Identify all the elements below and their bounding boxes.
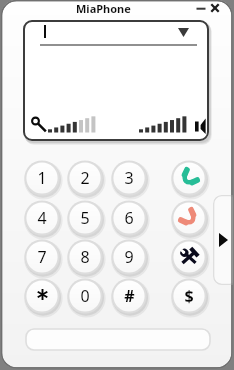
button[interactable]: 6 — [108, 197, 150, 239]
button[interactable]: * — [21, 275, 63, 317]
button[interactable]: 2 — [64, 157, 106, 199]
staticText: 3 — [124, 167, 134, 189]
button[interactable]: 4 — [21, 197, 63, 239]
button[interactable]: 0 — [64, 275, 106, 317]
staticText: 1 — [37, 167, 47, 189]
staticText: 9 — [124, 246, 134, 268]
button[interactable]: Settings — [168, 236, 210, 278]
staticText: 2 — [80, 167, 90, 189]
staticText: 4 — [37, 207, 47, 229]
staticText: $ — [184, 285, 194, 307]
button[interactable]: Minimize — [194, 1, 208, 15]
button[interactable]: # — [108, 275, 150, 317]
staticText: 7 — [37, 246, 47, 268]
button[interactable]: Close — [208, 1, 222, 15]
button[interactable]: Expand panel — [213, 195, 232, 285]
button[interactable]: $ — [168, 275, 210, 317]
button[interactable]: End call — [168, 197, 210, 239]
button[interactable]: 5 — [64, 197, 106, 239]
staticText: 8 — [80, 246, 90, 268]
staticText: # — [124, 285, 135, 307]
button[interactable]: 9 — [108, 236, 150, 278]
staticText: 6 — [124, 207, 134, 229]
staticText: 5 — [80, 207, 90, 229]
button[interactable]: Call — [168, 157, 210, 199]
staticText: MiaPhone — [76, 1, 131, 16]
button[interactable]: Recent numbers — [178, 28, 189, 37]
button[interactable]: 3 — [108, 157, 150, 199]
button[interactable]: 7 — [21, 236, 63, 278]
button[interactable]: 1 — [21, 157, 63, 199]
staticText: 0 — [80, 285, 90, 307]
button[interactable]: Status — [25, 328, 212, 353]
button[interactable]: 8 — [64, 236, 106, 278]
